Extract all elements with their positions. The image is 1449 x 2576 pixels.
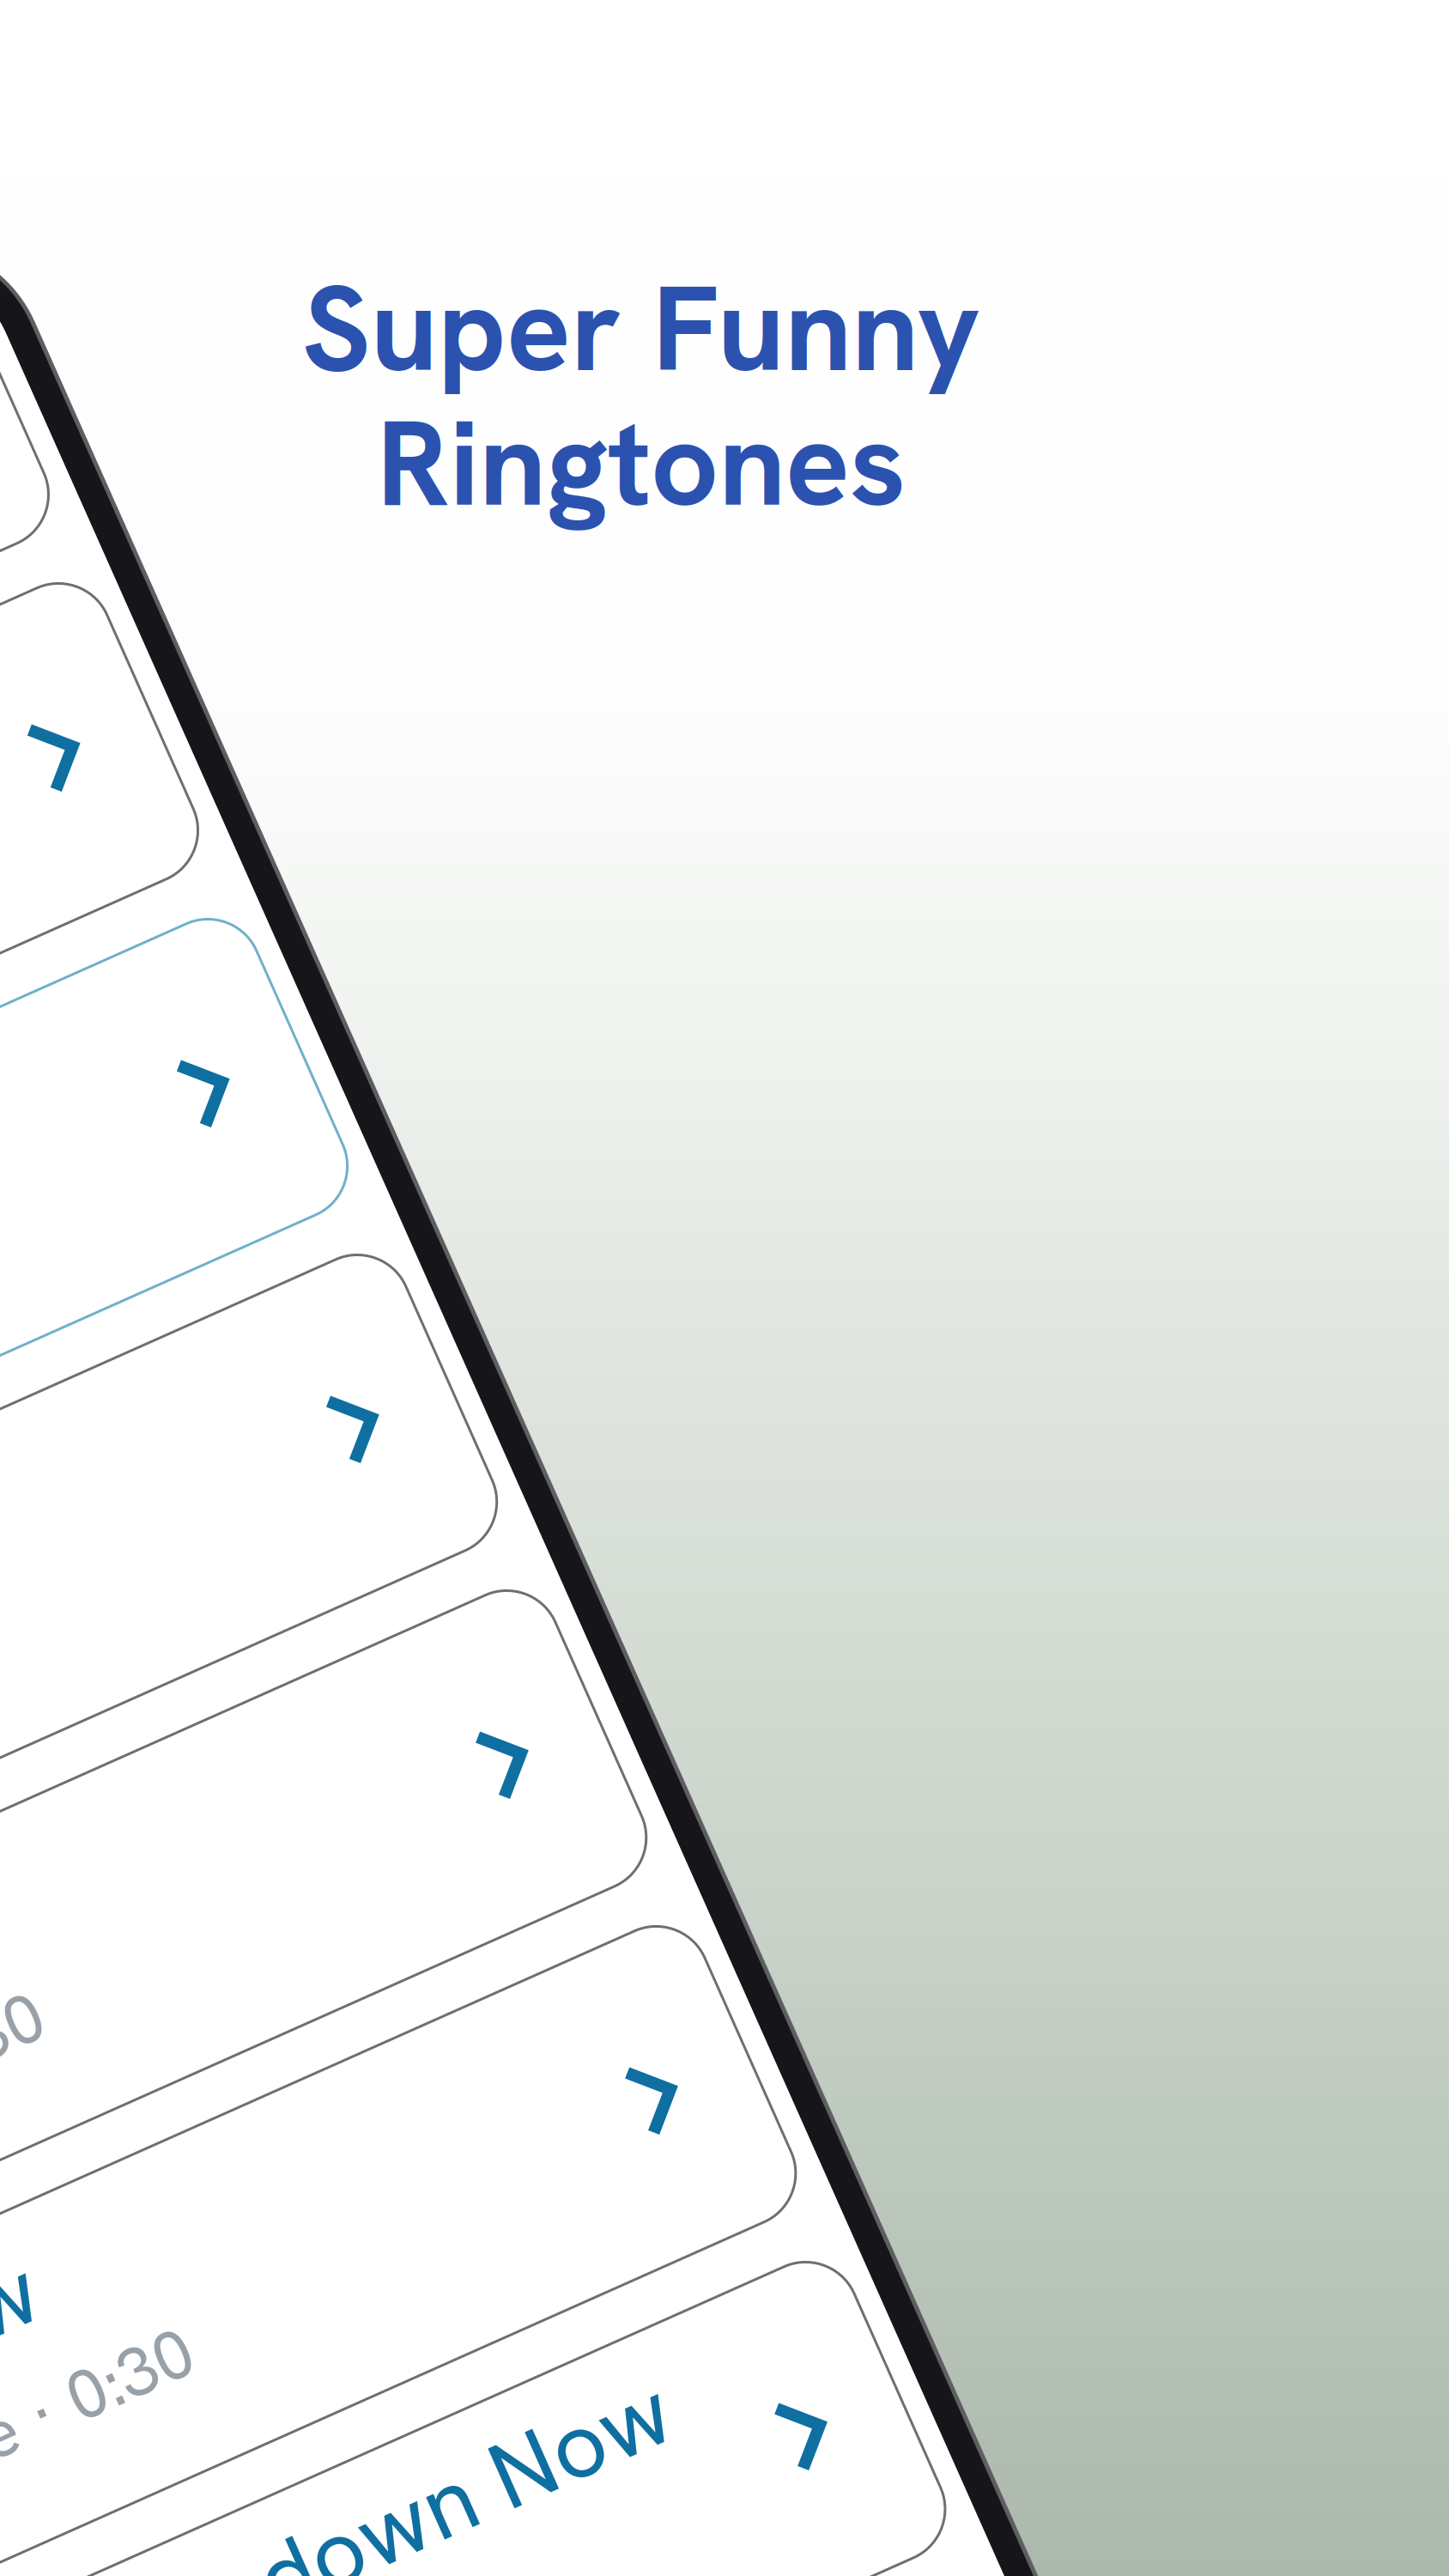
button[interactable]: Duck Quack [0,1445,548,1764]
button[interactable]: Rotary Bell [0,710,548,1029]
button[interactable]: Frog Beat [0,1813,548,2131]
button[interactable]: Banjo Hoedown Now [0,2548,548,2576]
button[interactable]: Big Cow [0,2180,548,2499]
staticText: Ringtones [377,386,906,541]
staticText: Super Funny [302,251,980,406]
button[interactable]: Old School [0,1078,548,1396]
staticText: Banjo Hoedown Now [0,2565,330,2576]
button[interactable]: Telephone [0,343,548,661]
